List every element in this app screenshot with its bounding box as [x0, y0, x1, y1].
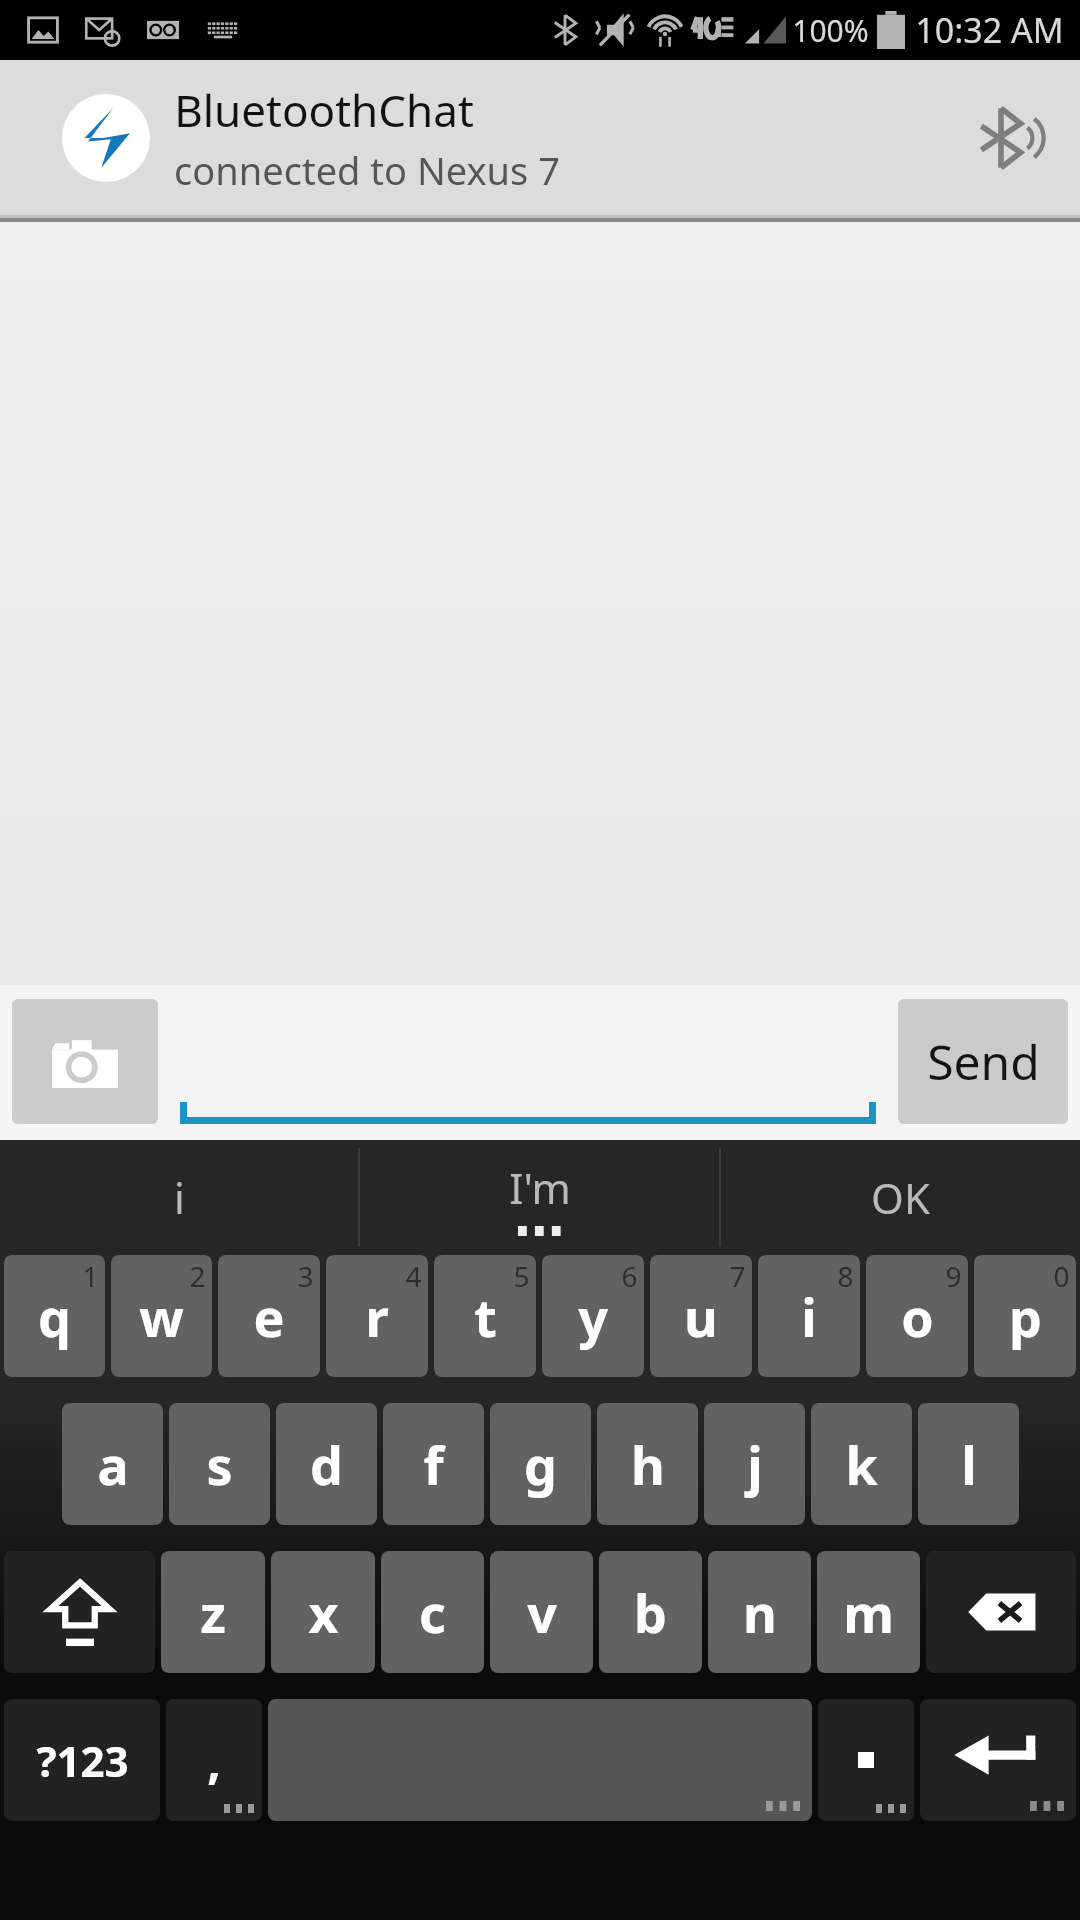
staticText: u — [684, 1281, 718, 1352]
button[interactable] — [818, 1699, 914, 1821]
button[interactable]: i — [0, 1140, 358, 1255]
staticText: 5 — [513, 1257, 530, 1295]
staticText: I'm — [509, 1159, 571, 1216]
staticText: g — [524, 1429, 557, 1500]
button[interactable]: v — [490, 1551, 593, 1673]
button[interactable]: n — [708, 1551, 811, 1673]
staticText: r — [365, 1281, 389, 1352]
button[interactable]: Space — [268, 1699, 812, 1821]
staticText: 8 — [837, 1257, 854, 1295]
staticText: ?123 — [36, 1732, 129, 1789]
button[interactable]: Backspace — [926, 1551, 1076, 1673]
staticText: l — [961, 1429, 977, 1500]
staticText: c — [419, 1577, 446, 1648]
button[interactable]: x — [271, 1551, 375, 1673]
button[interactable]: Enter — [920, 1699, 1076, 1821]
staticText: e — [253, 1281, 285, 1352]
staticText: z — [200, 1577, 226, 1648]
staticText: q — [38, 1281, 71, 1352]
button[interactable]: 4 — [326, 1255, 428, 1377]
staticText: n — [743, 1577, 777, 1648]
staticText: p — [1009, 1281, 1042, 1352]
staticText: Send — [927, 1029, 1040, 1094]
button[interactable]: Bluetooth connected — [960, 90, 1056, 186]
button[interactable]: OK — [721, 1140, 1080, 1255]
staticText: 1 — [82, 1257, 99, 1295]
staticText: 9 — [945, 1257, 962, 1295]
button[interactable]: 8 — [758, 1255, 860, 1377]
staticText: y — [578, 1281, 608, 1352]
button[interactable]: Attach photo — [12, 999, 158, 1124]
button[interactable]: 1 — [4, 1255, 105, 1377]
staticText: , — [207, 1728, 221, 1793]
staticText: 0 — [1053, 1257, 1070, 1295]
button[interactable]: 2 — [111, 1255, 212, 1377]
staticText: k — [845, 1429, 878, 1500]
staticText: 100% — [792, 10, 869, 51]
staticText: j — [747, 1429, 763, 1500]
button[interactable] — [180, 999, 876, 1124]
button[interactable]: Shift — [4, 1551, 155, 1673]
staticText: i — [801, 1281, 817, 1352]
staticText: b — [634, 1577, 667, 1648]
staticText: a — [97, 1429, 129, 1500]
button[interactable]: 7 — [650, 1255, 752, 1377]
staticText: o — [901, 1281, 934, 1352]
button[interactable]: a — [62, 1403, 163, 1525]
staticText: 10:32 AM — [915, 7, 1064, 53]
staticText: BluetoothChat — [174, 80, 474, 140]
button[interactable]: 9 — [866, 1255, 968, 1377]
button[interactable]: Send — [898, 999, 1068, 1124]
button[interactable]: h — [597, 1403, 698, 1525]
button[interactable]: ?123 — [4, 1699, 160, 1821]
staticText: i — [174, 1169, 185, 1226]
button[interactable]: j — [704, 1403, 805, 1525]
button[interactable]: I'm — [360, 1140, 719, 1255]
staticText: connected to Nexus 7 — [174, 144, 560, 196]
staticText: OK — [871, 1169, 930, 1226]
button[interactable]: 6 — [542, 1255, 644, 1377]
staticText: m — [843, 1577, 894, 1648]
staticText: 2 — [189, 1257, 206, 1295]
staticText: x — [308, 1577, 339, 1648]
staticText: 4 — [405, 1257, 422, 1295]
button[interactable]: z — [161, 1551, 265, 1673]
staticText: 7 — [729, 1257, 746, 1295]
button[interactable]: c — [381, 1551, 484, 1673]
button[interactable]: 0 — [974, 1255, 1076, 1377]
staticText: v — [527, 1577, 557, 1648]
button[interactable]: l — [918, 1403, 1019, 1525]
staticText: w — [139, 1281, 184, 1352]
button[interactable]: f — [383, 1403, 484, 1525]
staticText: 3 — [297, 1257, 314, 1295]
button[interactable]: 5 — [434, 1255, 536, 1377]
button[interactable]: s — [169, 1403, 270, 1525]
button[interactable]: d — [276, 1403, 377, 1525]
staticText: d — [310, 1429, 343, 1500]
button[interactable]: 3 — [218, 1255, 320, 1377]
staticText: t — [474, 1281, 497, 1352]
button[interactable]: k — [811, 1403, 912, 1525]
staticText: s — [206, 1429, 233, 1500]
staticText: f — [423, 1429, 444, 1500]
button[interactable]: , — [166, 1699, 262, 1821]
button[interactable]: m — [817, 1551, 920, 1673]
button[interactable]: BluetoothChat — [0, 60, 1080, 215]
staticText: 6 — [621, 1257, 638, 1295]
button[interactable]: b — [599, 1551, 702, 1673]
button[interactable]: g — [490, 1403, 591, 1525]
staticText: h — [631, 1429, 665, 1500]
